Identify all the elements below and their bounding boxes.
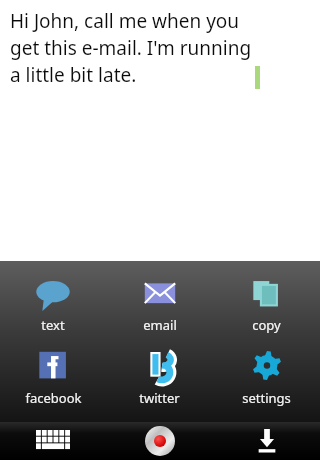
button[interactable]: Record: [106, 422, 213, 460]
staticText: twitter: [139, 389, 180, 407]
button[interactable]: facebook: [0, 348, 106, 407]
button[interactable]: copy: [213, 275, 320, 334]
button[interactable]: email: [106, 275, 213, 334]
staticText: facebook: [25, 389, 82, 407]
button[interactable]: Hi John, call me when you get this e-mai…: [0, 0, 320, 261]
staticText: email: [143, 316, 177, 334]
button[interactable]: Download: [213, 422, 320, 460]
button[interactable]: text: [0, 275, 106, 334]
button[interactable]: settings: [213, 348, 320, 407]
staticText: copy: [252, 316, 281, 334]
staticText: text: [41, 316, 65, 334]
staticText: settings: [242, 389, 291, 407]
button[interactable]: twitter: [106, 348, 213, 407]
button[interactable]: Keyboard: [0, 422, 106, 460]
staticText: Hi John, call me when you get this e-mai…: [10, 8, 252, 88]
